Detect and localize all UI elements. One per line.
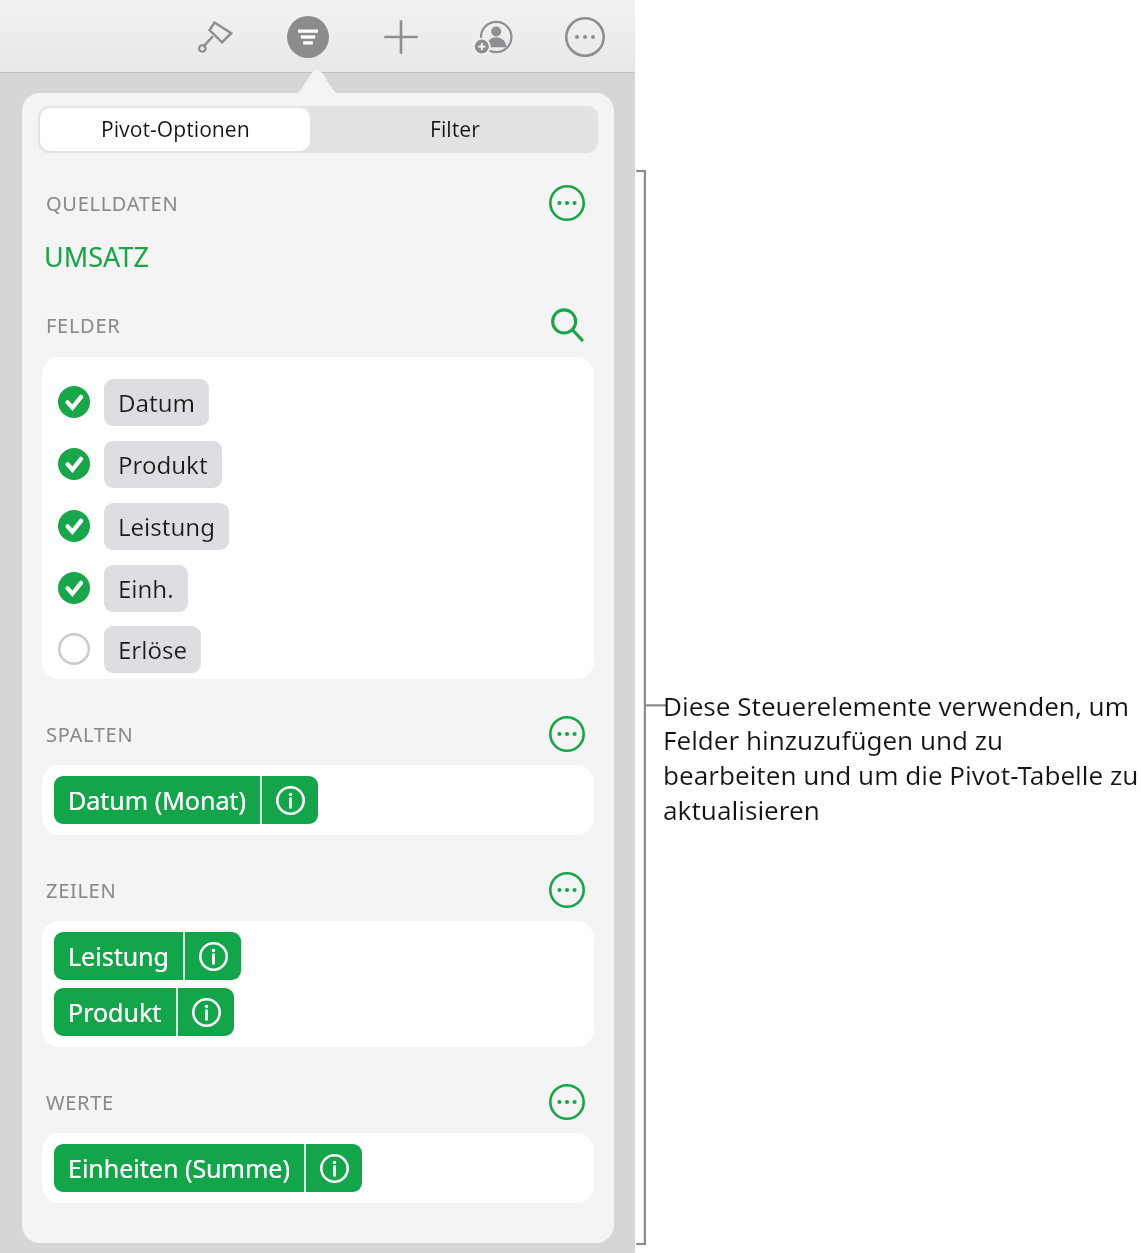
button[interactable]: Info Datum (Monat) (262, 776, 318, 824)
button[interactable] (548, 184, 586, 222)
button[interactable]: Produkt (42, 433, 594, 495)
staticText: Datum (118, 386, 195, 419)
button[interactable]: Weitere Optionen (559, 11, 611, 63)
button[interactable]: UMSATZ (44, 238, 149, 275)
staticText: Leistung (118, 510, 215, 543)
staticText: Filter (430, 115, 480, 144)
button[interactable]: Einheiten (Summe) (54, 1144, 362, 1192)
button[interactable]: Zusammenarbeiten (467, 11, 519, 63)
button[interactable]: Info Leistung (185, 932, 241, 980)
staticText: Produkt (68, 995, 162, 1029)
staticText: Produkt (118, 448, 208, 481)
button[interactable]: Leistung (54, 932, 241, 980)
staticText: ZEILEN (46, 877, 117, 904)
staticText: Erlöse (118, 633, 187, 666)
button[interactable] (548, 715, 586, 753)
staticText: Pivot-Optionen (101, 115, 250, 144)
button[interactable]: Filter (312, 106, 598, 153)
button[interactable]: Pivot-Optionen (282, 11, 334, 63)
button[interactable]: Format (190, 11, 242, 63)
button[interactable]: Pivot-Optionen (40, 108, 310, 151)
staticText: QUELLDATEN (46, 190, 179, 217)
staticText: Datum (Monat) (68, 783, 246, 817)
staticText: Leistung (68, 939, 169, 973)
button[interactable] (548, 871, 586, 909)
staticText: UMSATZ (44, 238, 149, 275)
button[interactable]: Info Produkt (178, 988, 234, 1036)
button[interactable] (548, 306, 586, 344)
button[interactable]: Datum (42, 371, 594, 433)
button[interactable]: Leistung (42, 495, 594, 557)
button[interactable]: Erlöse (42, 619, 594, 679)
button[interactable]: Einh. (42, 557, 594, 619)
button[interactable]: Hinzufügen (375, 11, 427, 63)
staticText: Einh. (118, 572, 174, 605)
button[interactable] (548, 1083, 586, 1121)
button[interactable]: Datum (Monat) (54, 776, 318, 824)
button[interactable]: Produkt (54, 988, 234, 1036)
staticText: SPALTEN (46, 721, 134, 748)
staticText: Einheiten (Summe) (68, 1151, 290, 1185)
staticText: WERTE (46, 1089, 114, 1116)
staticText: Diese Steuerelemente verwenden, um Felde… (663, 688, 1141, 828)
button[interactable]: Info Einheiten (Summe) (306, 1144, 362, 1192)
staticText: FELDER (46, 312, 121, 339)
